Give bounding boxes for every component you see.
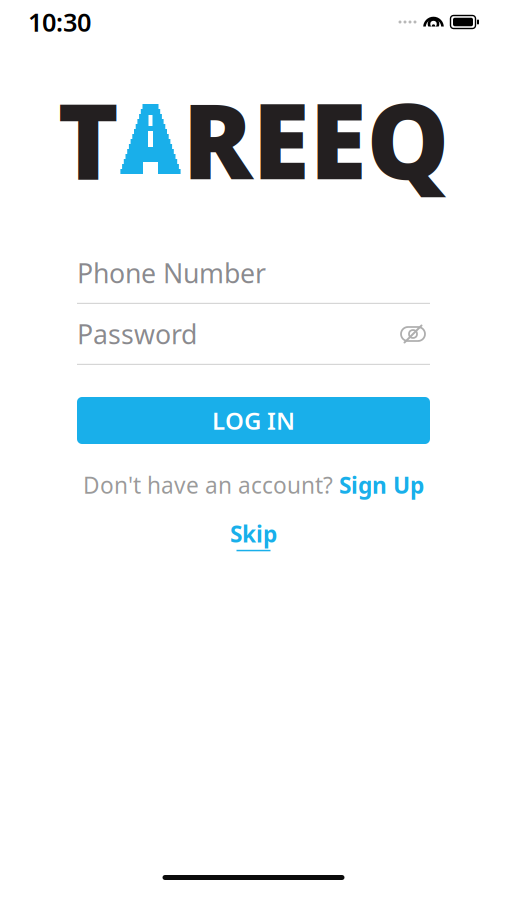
- staticText: T: [57, 70, 118, 208]
- staticText: Sign Up: [339, 470, 424, 500]
- button[interactable]: Don't have an account?: [77, 470, 430, 500]
- staticText: LOG IN: [212, 405, 295, 436]
- staticText: 10:30: [28, 5, 91, 39]
- staticText: Password: [77, 316, 197, 352]
- staticText: Phone Number: [77, 255, 266, 291]
- staticText: Skip: [230, 519, 277, 549]
- button[interactable]: LOG IN: [77, 397, 430, 444]
- staticText: Don't have an account?: [83, 470, 333, 500]
- button[interactable]: Show password: [396, 319, 430, 349]
- staticText: REEQ: [182, 70, 449, 208]
- button[interactable]: Skip: [77, 520, 430, 550]
